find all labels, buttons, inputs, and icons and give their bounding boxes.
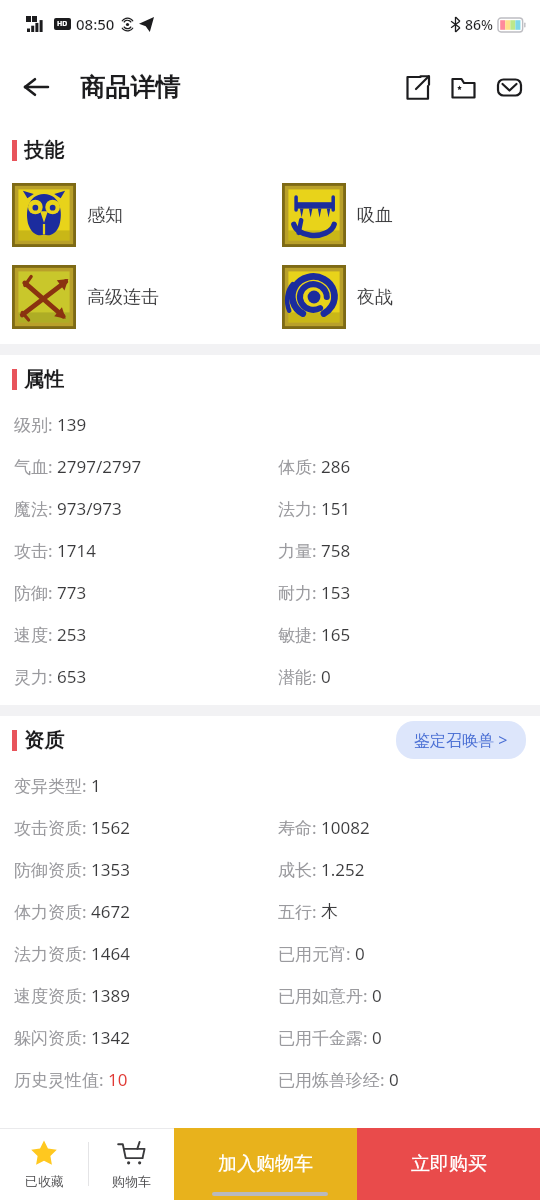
button[interactable]: Share: [396, 66, 438, 108]
staticText: 0: [355, 942, 365, 965]
staticText: 0: [321, 665, 331, 688]
staticText: 变异类型:: [14, 774, 91, 797]
staticText: 五行:: [278, 900, 321, 923]
staticText: 魔法:: [14, 497, 57, 520]
staticText: 气血:: [14, 455, 57, 478]
staticText: 1389: [91, 984, 130, 1007]
staticText: 鉴定召唤兽 >: [414, 729, 508, 751]
staticText: 法力资质:: [14, 942, 91, 965]
staticText: 法力:: [278, 497, 321, 520]
staticText: 0: [372, 984, 382, 1007]
staticText: 躲闪资质:: [14, 1026, 91, 1049]
staticText: 已用千金露:: [278, 1026, 372, 1049]
button[interactable]: 购物车: [89, 1128, 174, 1200]
button[interactable]: 高级连击: [12, 256, 270, 338]
staticText: 高级连击: [87, 286, 159, 309]
staticText: 寿命:: [278, 816, 321, 839]
staticText: 技能: [24, 138, 64, 163]
staticText: 防御:: [14, 581, 57, 604]
staticText: 2797/2797: [57, 455, 142, 478]
staticText: 加入购物车: [218, 1152, 313, 1176]
staticText: 立即购买: [411, 1152, 487, 1176]
staticText: 灵力:: [14, 665, 57, 688]
staticText: 已收藏: [25, 1173, 64, 1189]
staticText: 速度:: [14, 623, 57, 646]
staticText: 86%: [465, 15, 493, 34]
staticText: 0: [389, 1068, 399, 1091]
staticText: 已用炼兽珍经:: [278, 1068, 389, 1091]
staticText: 体质:: [278, 455, 321, 478]
staticText: 购物车: [112, 1173, 151, 1189]
button[interactable]: Back: [12, 63, 60, 111]
staticText: 力量:: [278, 539, 321, 562]
staticText: 夜战: [357, 286, 393, 309]
staticText: 吸血: [357, 204, 393, 227]
staticText: 153: [321, 581, 351, 604]
staticText: 防御资质:: [14, 858, 91, 881]
staticText: 1714: [57, 539, 96, 562]
staticText: 攻击资质:: [14, 816, 91, 839]
button[interactable]: 已收藏: [0, 1128, 88, 1200]
staticText: 敏捷:: [278, 623, 321, 646]
staticText: 253: [57, 623, 87, 646]
button[interactable]: 加入购物车: [174, 1128, 357, 1200]
staticText: 感知: [87, 204, 123, 227]
button[interactable]: 立即购买: [357, 1128, 540, 1200]
staticText: 4672: [91, 900, 130, 923]
button[interactable]: Favorites folder: [442, 66, 484, 108]
staticText: 1464: [91, 942, 130, 965]
staticText: 973/973: [57, 497, 122, 520]
staticText: 151: [321, 497, 351, 520]
staticText: 08:50: [76, 14, 115, 34]
staticText: 成长:: [278, 858, 321, 881]
staticText: 1353: [91, 858, 130, 881]
button[interactable]: 夜战: [282, 256, 540, 338]
staticText: 1: [91, 774, 101, 797]
staticText: 耐力:: [278, 581, 321, 604]
staticText: 级别:: [14, 413, 57, 436]
staticText: 286: [321, 455, 351, 478]
staticText: 资质: [24, 728, 64, 753]
staticText: 1.252: [321, 858, 365, 881]
staticText: 1342: [91, 1026, 130, 1049]
staticText: 139: [57, 413, 87, 436]
staticText: 攻击:: [14, 539, 57, 562]
button[interactable]: 吸血: [282, 174, 540, 256]
staticText: HD: [57, 19, 68, 29]
staticText: 体力资质:: [14, 900, 91, 923]
staticText: 已用元宵:: [278, 942, 355, 965]
staticText: 773: [57, 581, 87, 604]
staticText: 历史灵性值:: [14, 1068, 108, 1091]
staticText: 1562: [91, 816, 130, 839]
staticText: 10: [108, 1068, 128, 1091]
staticText: 758: [321, 539, 351, 562]
staticText: 已用如意丹:: [278, 984, 372, 1007]
staticText: 潜能:: [278, 665, 321, 688]
button[interactable]: 感知: [12, 174, 270, 256]
staticText: 0: [372, 1026, 382, 1049]
staticText: 属性: [24, 367, 64, 392]
staticText: 10082: [321, 816, 370, 839]
staticText: 165: [321, 623, 351, 646]
button[interactable]: 鉴定召唤兽 >: [396, 721, 526, 759]
staticText: 速度资质:: [14, 984, 91, 1007]
button[interactable]: Messages: [488, 66, 530, 108]
staticText: 木: [321, 901, 338, 922]
staticText: 商品详情: [80, 72, 180, 103]
staticText: 653: [57, 665, 87, 688]
